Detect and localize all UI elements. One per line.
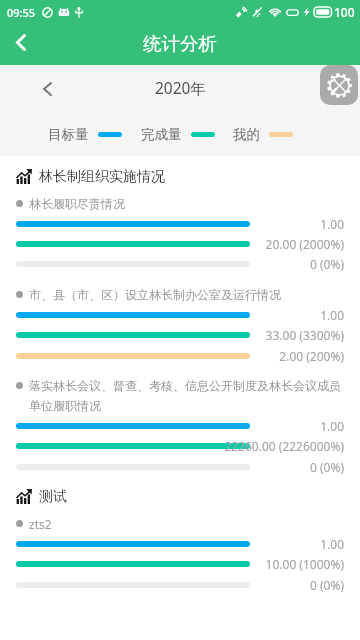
staticText: 20.00 (2000%)	[265, 236, 344, 252]
staticText: 0 (0%)	[309, 577, 344, 593]
button[interactable]: 林长制组织实施情况	[16, 168, 360, 184]
button[interactable]: Settings	[320, 65, 358, 105]
staticText: 落实林长会议、督查、考核、信息公开制度及林长会议成员单位履职情况	[29, 375, 342, 415]
staticText: 测试	[39, 488, 67, 504]
staticText: 我的	[233, 126, 260, 143]
staticText: 33.00 (3300%)	[265, 327, 344, 343]
staticText: 市、县（市、区）设立林长制办公室及运行情况	[29, 284, 281, 304]
staticText: 0 (0%)	[309, 256, 344, 272]
button[interactable]: 测试	[16, 488, 360, 504]
staticText: 0 (0%)	[309, 459, 344, 475]
staticText: 目标量	[48, 126, 89, 143]
button[interactable]: Previous year	[34, 75, 61, 102]
staticText: 林长制组织实施情况	[39, 168, 165, 184]
staticText: 100	[334, 4, 355, 20]
staticText: 统计分析	[143, 32, 217, 55]
staticText: 1.00	[320, 418, 344, 434]
staticText: 1.00	[320, 216, 344, 232]
button[interactable]: 完成量	[141, 126, 215, 143]
staticText: zts2	[29, 513, 52, 533]
staticText: 林长履职尽责情况	[29, 193, 125, 213]
staticText: 1.00	[320, 307, 344, 323]
staticText: 10.00 (1000%)	[265, 556, 344, 572]
button[interactable]: Back	[0, 24, 42, 65]
staticText: 09:55	[7, 5, 36, 20]
staticText: 1.00	[320, 536, 344, 552]
staticText: 2020年	[155, 77, 206, 98]
staticText: 22260.00 (2226000%)	[224, 438, 344, 454]
staticText: 2.00 (200%)	[279, 348, 344, 364]
staticText: 完成量	[141, 126, 182, 143]
button[interactable]: 目标量	[48, 126, 122, 143]
button[interactable]: 我的	[233, 126, 293, 143]
